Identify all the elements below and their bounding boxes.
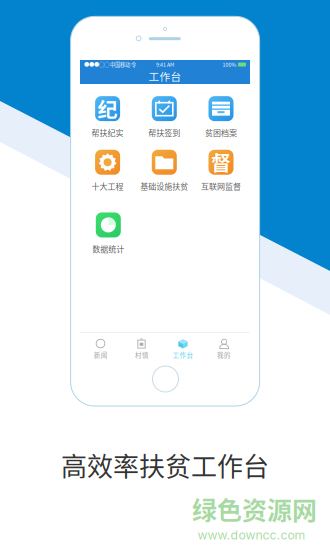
staticText: 十大工程 xyxy=(92,180,124,192)
staticText: 新闻 xyxy=(94,350,108,360)
staticText: 数据统计 xyxy=(92,243,124,255)
button[interactable]: 纪 xyxy=(79,97,136,137)
staticText: 工作台 xyxy=(148,68,181,84)
staticText: 工作台 xyxy=(172,350,193,360)
staticText: www.downcc.com xyxy=(197,528,305,542)
staticText: 纪 xyxy=(98,94,118,123)
staticText: ●●●○○ 中国移动 令 xyxy=(84,61,136,68)
button[interactable]: 村情 xyxy=(121,339,162,359)
button[interactable]: 帮扶签到 xyxy=(136,97,193,137)
staticText: 100% xyxy=(222,61,236,68)
button[interactable]: 贫困档案 xyxy=(193,97,249,137)
button[interactable]: 新闻 xyxy=(80,339,121,359)
staticText: 帮扶纪实 xyxy=(92,127,124,138)
staticText: 督 xyxy=(211,148,231,177)
button[interactable]: 督 xyxy=(193,151,249,191)
staticText: 9:41 AM xyxy=(156,61,174,68)
staticText: 帮扶签到 xyxy=(148,127,180,138)
button[interactable]: 十大工程 xyxy=(79,151,136,191)
button[interactable]: 基础设施扶贫 xyxy=(136,151,193,191)
staticText: 我的 xyxy=(217,350,231,360)
staticText: 互联网监督 xyxy=(201,180,241,192)
button[interactable]: 工作台 xyxy=(162,339,203,359)
staticText: 贫困档案 xyxy=(205,127,237,138)
staticText: 基础设施扶贫 xyxy=(140,180,188,192)
button[interactable]: 我的 xyxy=(204,339,245,359)
button[interactable]: 数据统计 xyxy=(80,213,137,253)
staticText: 高效率扶贫工作台 xyxy=(61,446,269,484)
staticText: 村情 xyxy=(135,350,149,360)
staticText: 绿色资源网 xyxy=(192,491,317,527)
